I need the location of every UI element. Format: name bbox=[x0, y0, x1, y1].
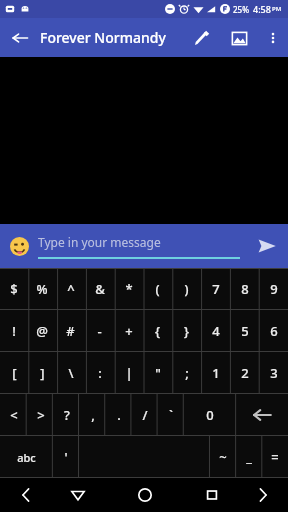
button[interactable]: ^ bbox=[56, 268, 85, 310]
button[interactable]: } bbox=[172, 310, 201, 352]
staticText: " bbox=[155, 364, 161, 382]
button[interactable]: Recents bbox=[186, 478, 237, 512]
button[interactable]: Type in your message bbox=[38, 234, 240, 259]
staticText: : bbox=[98, 364, 102, 382]
staticText: [ bbox=[12, 364, 17, 382]
staticText: 9 bbox=[270, 280, 278, 298]
button[interactable]: ` bbox=[158, 394, 184, 436]
button[interactable]: ? bbox=[54, 394, 80, 436]
staticText: 3 bbox=[270, 364, 278, 382]
staticText: | bbox=[125, 364, 133, 382]
button[interactable]: = bbox=[262, 436, 288, 478]
button[interactable]: Emoji bbox=[0, 227, 38, 265]
button[interactable]: - bbox=[85, 310, 114, 352]
button[interactable]: : bbox=[85, 352, 114, 394]
button[interactable]: _ bbox=[236, 436, 262, 478]
button[interactable]: " bbox=[143, 352, 172, 394]
button[interactable]: , bbox=[80, 394, 106, 436]
button[interactable]: abc bbox=[0, 436, 53, 478]
staticText: $ bbox=[10, 280, 18, 298]
button[interactable]: 4 bbox=[201, 310, 230, 352]
staticText: 2 bbox=[241, 364, 249, 382]
button[interactable]: . bbox=[106, 394, 132, 436]
button[interactable]: | bbox=[114, 352, 143, 394]
button[interactable]: Previous bbox=[0, 478, 52, 512]
button[interactable]: @ bbox=[28, 310, 56, 352]
button[interactable]: [ bbox=[0, 352, 28, 394]
staticText: @ bbox=[36, 322, 48, 340]
staticText: PM bbox=[272, 5, 282, 13]
staticText: ^ bbox=[67, 280, 75, 298]
button[interactable]: ! bbox=[0, 310, 28, 352]
button[interactable]: % bbox=[28, 268, 56, 310]
button[interactable]: > bbox=[27, 394, 54, 436]
staticText: ` bbox=[169, 406, 173, 424]
staticText: / bbox=[142, 406, 148, 424]
button[interactable]: ) bbox=[172, 268, 201, 310]
button[interactable]: 8 bbox=[230, 268, 259, 310]
staticText: 4:58 bbox=[253, 3, 271, 15]
button[interactable]: ( bbox=[143, 268, 172, 310]
staticText: 0 bbox=[206, 406, 214, 424]
staticText: . bbox=[117, 406, 121, 424]
button[interactable]: 9 bbox=[259, 268, 288, 310]
staticText: { bbox=[155, 322, 160, 340]
button[interactable]: Space bbox=[79, 436, 210, 478]
staticText: 7 bbox=[212, 280, 220, 298]
staticText: _ bbox=[246, 448, 252, 466]
staticText: * bbox=[125, 280, 133, 298]
button[interactable]: Home bbox=[104, 478, 186, 512]
button[interactable]: 2 bbox=[230, 352, 259, 394]
button[interactable]: Send bbox=[246, 225, 288, 267]
staticText: # bbox=[66, 322, 75, 340]
button[interactable]: More options bbox=[258, 23, 288, 53]
button[interactable]: ' bbox=[53, 436, 79, 478]
button[interactable]: & bbox=[85, 268, 114, 310]
staticText: 4 bbox=[212, 322, 220, 340]
staticText: - bbox=[97, 322, 102, 340]
button[interactable]: + bbox=[114, 310, 143, 352]
staticText: = bbox=[271, 448, 279, 466]
staticText: ! bbox=[12, 322, 16, 340]
staticText: ( bbox=[155, 280, 160, 298]
button[interactable]: 7 bbox=[201, 268, 230, 310]
staticText: Forever Normandy bbox=[40, 28, 182, 47]
button[interactable]: / bbox=[132, 394, 158, 436]
button[interactable]: # bbox=[56, 310, 85, 352]
button[interactable]: \ bbox=[56, 352, 85, 394]
button[interactable]: < bbox=[0, 394, 27, 436]
staticText: 5 bbox=[241, 322, 249, 340]
staticText: > bbox=[37, 406, 45, 424]
staticText: ' bbox=[64, 448, 68, 466]
button[interactable]: ~ bbox=[210, 436, 236, 478]
staticText: Type in your message bbox=[38, 234, 161, 250]
staticText: ; bbox=[185, 364, 189, 382]
button[interactable]: 3 bbox=[259, 352, 288, 394]
button[interactable]: 5 bbox=[230, 310, 259, 352]
staticText: 25% bbox=[233, 4, 249, 15]
staticText: % bbox=[36, 280, 48, 298]
button[interactable]: 1 bbox=[201, 352, 230, 394]
button[interactable]: * bbox=[114, 268, 143, 310]
button[interactable]: ] bbox=[28, 352, 56, 394]
button[interactable]: Edit bbox=[182, 19, 220, 57]
staticText: abc bbox=[17, 450, 36, 465]
button[interactable]: Back bbox=[52, 478, 104, 512]
staticText: \ bbox=[68, 364, 74, 382]
button[interactable]: Next bbox=[237, 478, 288, 512]
button[interactable]: Backspace bbox=[236, 394, 288, 436]
button[interactable]: Back bbox=[0, 18, 40, 57]
staticText: 6 bbox=[270, 322, 278, 340]
staticText: ) bbox=[184, 280, 189, 298]
staticText: + bbox=[125, 322, 133, 340]
staticText: & bbox=[95, 280, 105, 298]
button[interactable]: Image bbox=[220, 19, 258, 57]
button[interactable]: $ bbox=[0, 268, 28, 310]
staticText: ~ bbox=[219, 448, 227, 466]
staticText: ] bbox=[40, 364, 45, 382]
button[interactable]: 6 bbox=[259, 310, 288, 352]
button[interactable]: { bbox=[143, 310, 172, 352]
button[interactable]: ; bbox=[172, 352, 201, 394]
button[interactable]: 0 bbox=[184, 394, 236, 436]
staticText: ? bbox=[64, 406, 70, 424]
